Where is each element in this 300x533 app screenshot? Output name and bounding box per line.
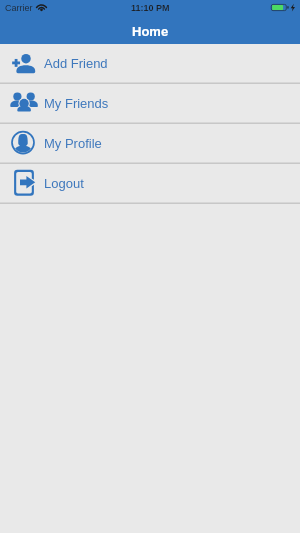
button[interactable]: Logout xyxy=(0,164,300,203)
staticText: Logout xyxy=(44,176,84,191)
staticText: Home xyxy=(132,24,169,39)
button[interactable]: My Friends xyxy=(0,84,300,123)
staticText: 11:10 PM xyxy=(131,3,170,13)
staticText: My Profile xyxy=(44,136,102,151)
staticText: Carrier xyxy=(5,3,33,13)
button[interactable]: Add Friend xyxy=(0,44,300,83)
staticText: My Friends xyxy=(44,96,109,111)
button[interactable]: My Profile xyxy=(0,124,300,163)
staticText: Add Friend xyxy=(44,56,108,71)
